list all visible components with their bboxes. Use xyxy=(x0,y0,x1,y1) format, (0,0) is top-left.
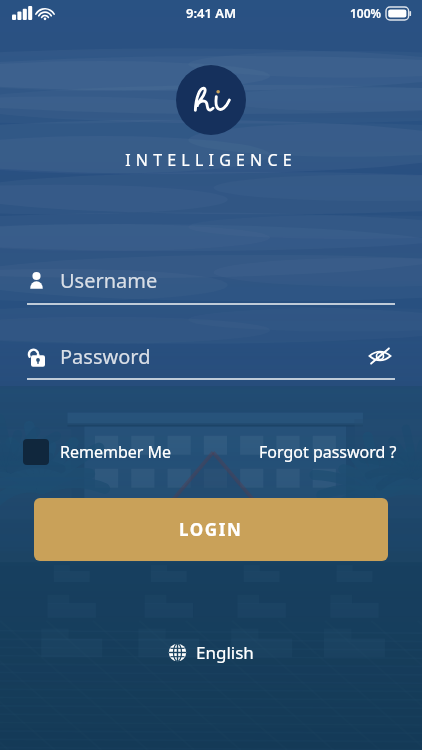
button[interactable]: Show password xyxy=(365,341,395,371)
button[interactable]: English xyxy=(156,633,266,672)
button[interactable]: Forgot password ? xyxy=(257,437,399,467)
staticText: Password xyxy=(60,343,151,370)
staticText: LOGIN xyxy=(179,518,243,541)
button[interactable]: Remember Me xyxy=(23,439,172,465)
button[interactable]: LOGIN xyxy=(34,498,388,561)
staticText: 100% xyxy=(350,5,382,21)
staticText: 9:41 AM xyxy=(186,4,237,22)
button[interactable]: Password xyxy=(27,341,395,371)
staticText: Forgot password ? xyxy=(259,441,397,463)
staticText: English xyxy=(196,641,254,664)
staticText: Remember Me xyxy=(60,441,172,463)
staticText: INTELLIGENCE xyxy=(125,149,297,171)
button[interactable]: Username xyxy=(27,267,395,305)
staticText: Username xyxy=(60,267,158,294)
